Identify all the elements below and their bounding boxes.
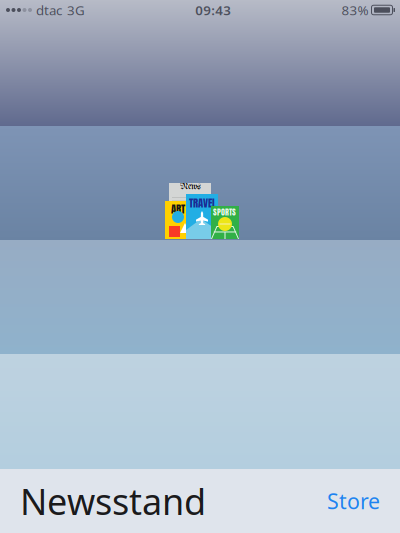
staticText: 09:43 [195,1,231,19]
staticText: ART [171,201,185,217]
staticText: Store [327,487,380,515]
staticText: SPORTS [213,206,236,218]
button[interactable]: Store [317,479,382,523]
staticText: News [180,182,201,192]
staticText: 83% [341,1,368,19]
staticText: dtac [36,1,62,19]
staticText: 3G [67,1,85,19]
staticText: TRAVEL [189,195,216,211]
staticText: Newsstand [20,477,206,525]
